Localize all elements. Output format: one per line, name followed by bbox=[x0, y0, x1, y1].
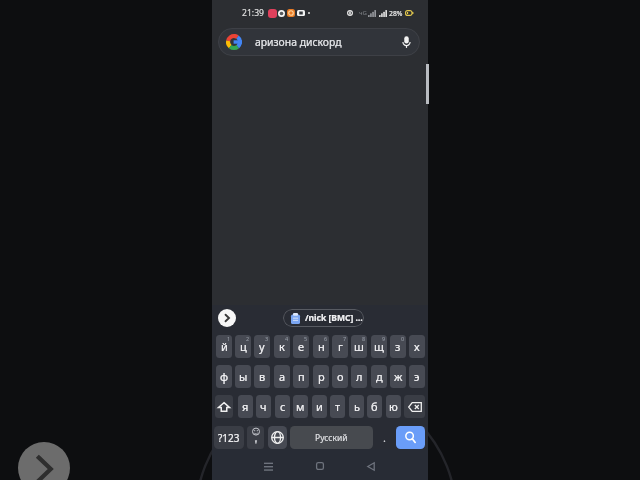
staticText: б bbox=[371, 399, 378, 414]
staticText: 5 bbox=[304, 335, 308, 342]
staticText: х bbox=[414, 339, 420, 354]
staticText: ь bbox=[354, 399, 360, 414]
staticText: ч bbox=[260, 399, 267, 414]
button[interactable]: с bbox=[275, 395, 290, 418]
staticText: 7 bbox=[343, 335, 347, 342]
button[interactable]: Recents bbox=[256, 454, 280, 478]
button[interactable]: Home bbox=[308, 454, 332, 478]
staticText: 21:39 bbox=[242, 7, 264, 19]
staticText: а bbox=[279, 369, 286, 384]
button[interactable]: ч bbox=[256, 395, 271, 418]
button[interactable]: п bbox=[293, 365, 309, 388]
staticText: э bbox=[414, 369, 420, 384]
button[interactable]: Expand toolbar bbox=[218, 309, 236, 327]
button[interactable]: и bbox=[312, 395, 327, 418]
staticText: д bbox=[376, 369, 383, 384]
button[interactable]: ш bbox=[351, 335, 367, 358]
staticText: ф bbox=[220, 369, 229, 384]
button[interactable]: о bbox=[332, 365, 348, 388]
button[interactable]: Shift bbox=[215, 395, 233, 418]
button[interactable]: /nick [BMC] … bbox=[283, 309, 364, 327]
staticText: Русский bbox=[315, 432, 348, 444]
staticText: 8 bbox=[362, 335, 366, 342]
button[interactable]: х bbox=[409, 335, 425, 358]
staticText: л bbox=[356, 369, 363, 384]
staticText: ю bbox=[389, 399, 398, 414]
button[interactable]: аризона дискорд bbox=[218, 28, 420, 56]
button[interactable]: б bbox=[367, 395, 382, 418]
staticText: 9 bbox=[382, 335, 386, 342]
button[interactable]: Backspace bbox=[404, 395, 425, 418]
staticText: й bbox=[221, 339, 228, 354]
staticText: н bbox=[318, 339, 325, 354]
staticText: чG bbox=[359, 9, 367, 17]
button[interactable]: Back bbox=[359, 454, 383, 478]
staticText: ?123 bbox=[218, 431, 240, 445]
button[interactable]: е bbox=[293, 335, 309, 358]
staticText: к bbox=[279, 339, 285, 354]
button[interactable]: Change language bbox=[268, 426, 287, 449]
button[interactable]: з bbox=[390, 335, 406, 358]
staticText: р bbox=[318, 369, 325, 384]
staticText: 3 bbox=[265, 335, 269, 342]
staticText: ш bbox=[354, 339, 364, 354]
staticText: 1 bbox=[227, 335, 231, 342]
staticText: 28% bbox=[389, 9, 403, 18]
button[interactable]: я bbox=[238, 395, 253, 418]
button[interactable]: ы bbox=[235, 365, 251, 388]
staticText: 4 bbox=[285, 335, 289, 342]
button[interactable]: Emoji bbox=[247, 426, 264, 449]
button[interactable]: л bbox=[351, 365, 367, 388]
button[interactable]: у bbox=[254, 335, 270, 358]
button[interactable]: а bbox=[274, 365, 290, 388]
button[interactable]: щ bbox=[371, 335, 387, 358]
staticText: щ bbox=[374, 339, 384, 354]
button[interactable]: р bbox=[313, 365, 329, 388]
staticText: п bbox=[298, 369, 305, 384]
staticText: о bbox=[337, 369, 344, 384]
staticText: у bbox=[259, 339, 265, 354]
staticText: 0 bbox=[401, 335, 405, 342]
staticText: м bbox=[296, 399, 305, 414]
button[interactable]: т bbox=[330, 395, 345, 418]
staticText: г bbox=[338, 339, 343, 354]
button[interactable]: ?123 bbox=[214, 426, 244, 449]
staticText: з bbox=[395, 339, 401, 354]
staticText: я bbox=[242, 399, 249, 414]
button[interactable]: Русский bbox=[290, 426, 373, 449]
staticText: . bbox=[383, 430, 386, 445]
button[interactable]: г bbox=[332, 335, 348, 358]
staticText: /nick [BMC] … bbox=[305, 312, 363, 324]
staticText: 6 bbox=[324, 335, 328, 342]
button[interactable]: Next bbox=[18, 442, 70, 480]
button[interactable]: Search bbox=[396, 426, 425, 449]
button[interactable]: э bbox=[409, 365, 425, 388]
staticText: с bbox=[280, 399, 286, 414]
button[interactable]: ю bbox=[386, 395, 401, 418]
staticText: и bbox=[316, 399, 323, 414]
staticText: ы bbox=[239, 369, 248, 384]
button[interactable]: ж bbox=[390, 365, 406, 388]
button[interactable]: й bbox=[216, 335, 232, 358]
staticText: ц bbox=[240, 339, 247, 354]
button[interactable]: в bbox=[254, 365, 270, 388]
button[interactable]: м bbox=[293, 395, 308, 418]
button[interactable]: ф bbox=[216, 365, 232, 388]
button[interactable]: н bbox=[313, 335, 329, 358]
button[interactable]: ц bbox=[235, 335, 251, 358]
staticText: т bbox=[335, 399, 341, 414]
staticText: ж bbox=[394, 369, 403, 384]
staticText: аризона дискорд bbox=[255, 35, 342, 49]
staticText: в bbox=[259, 369, 266, 384]
button[interactable]: д bbox=[371, 365, 387, 388]
staticText: 2 bbox=[246, 335, 250, 342]
staticText: е bbox=[298, 339, 305, 354]
button[interactable]: . bbox=[375, 426, 394, 449]
button[interactable]: ь bbox=[349, 395, 364, 418]
button[interactable]: к bbox=[274, 335, 290, 358]
